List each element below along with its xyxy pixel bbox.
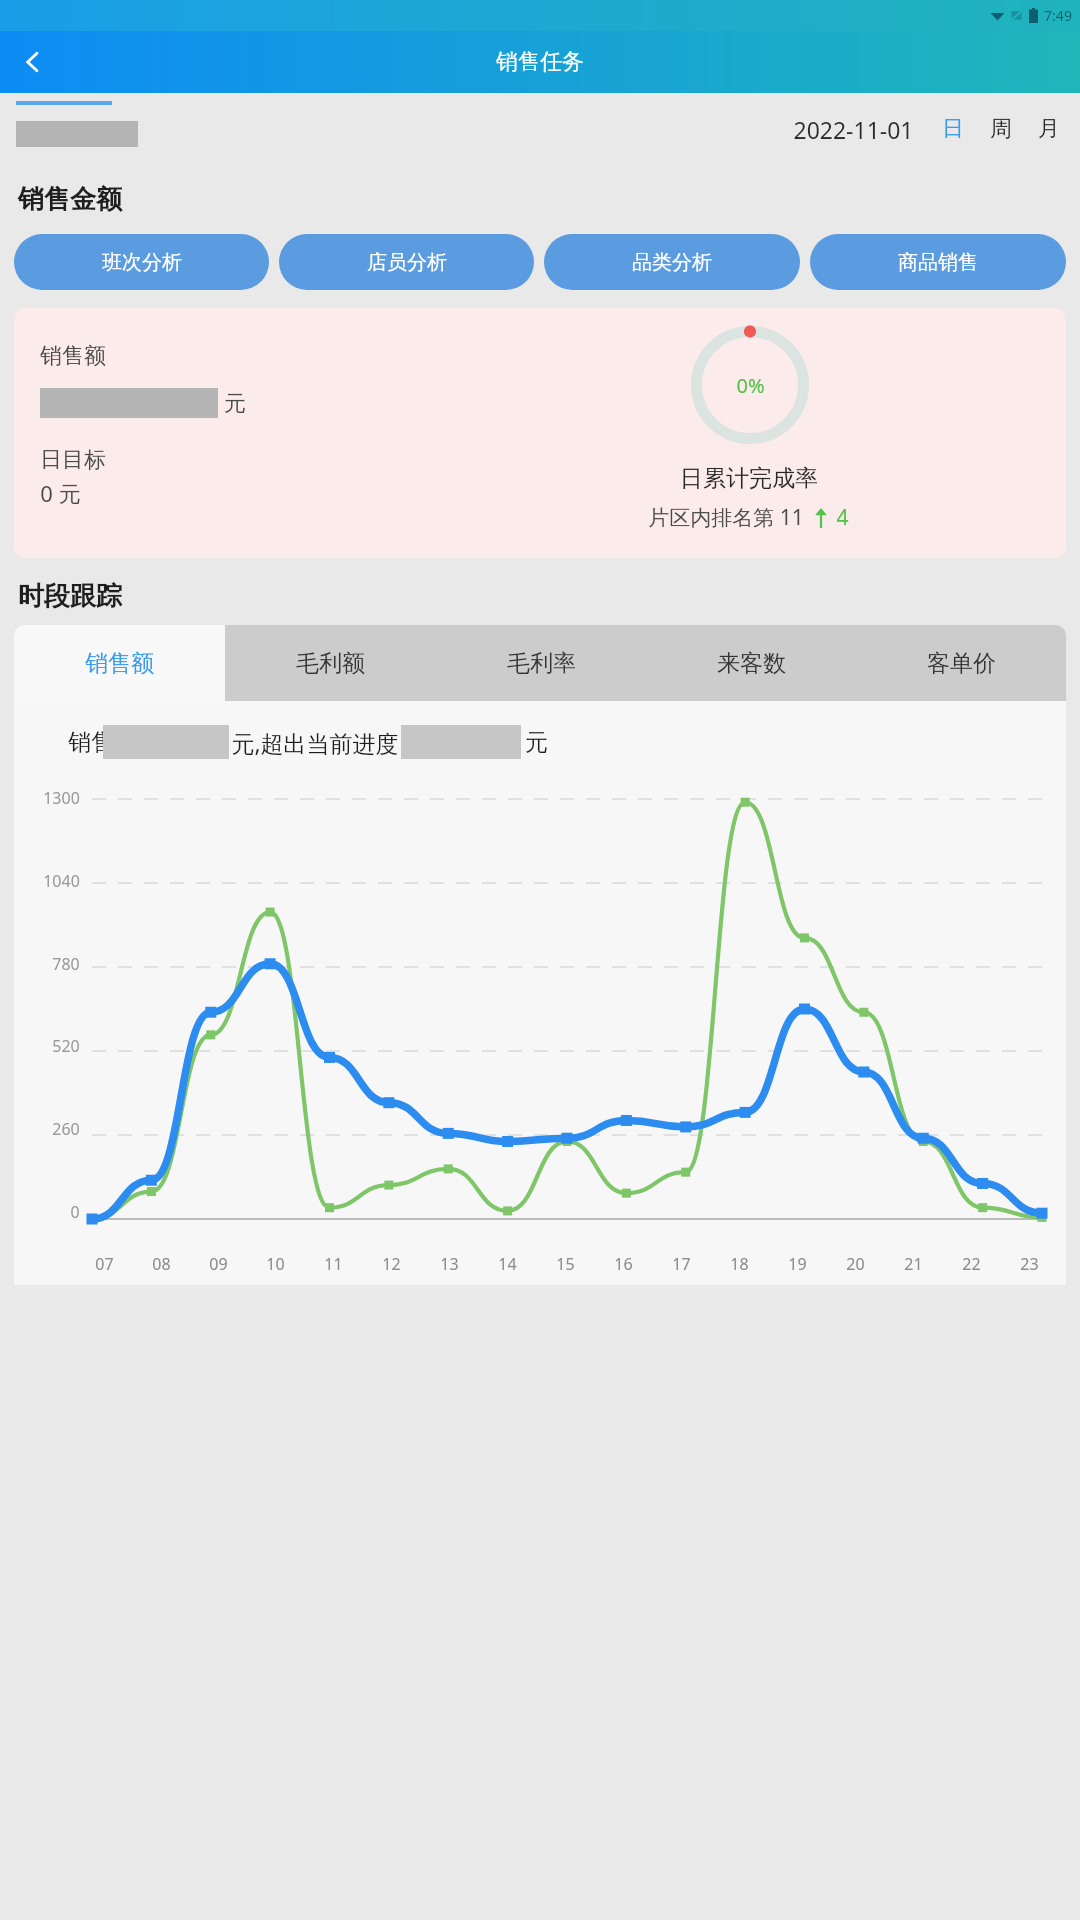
staticText: 18 [730,1253,749,1275]
staticText: 元 [525,728,548,757]
staticText: 23 [1020,1253,1039,1275]
staticText: 片区内排名第 11 [648,503,804,532]
staticText: 客单价 [927,649,996,678]
staticText: 0 元 [40,478,81,508]
staticText: 21 [904,1253,923,1275]
staticText: 班次分析 [102,250,182,275]
staticText: 日累计完成率 [680,464,818,493]
staticText: 来客数 [717,649,786,678]
staticText: 12 [382,1253,401,1275]
button[interactable]: 商品销售 [810,234,1066,290]
staticText: 09 [209,1253,228,1275]
button[interactable]: Back [6,35,60,89]
button[interactable]: 周 [990,115,1012,143]
button[interactable]: 月 [1038,115,1060,143]
staticText: 销售额 [85,649,154,678]
staticText: 1040 [43,870,80,892]
button[interactable]: 毛利额 [225,625,436,701]
staticText: 13 [440,1253,459,1275]
button[interactable]: 店员分析 [279,234,534,290]
staticText: 销售额 [40,342,106,370]
staticText: 元 [224,390,246,418]
staticText: 元,超出当前进度 [231,727,399,758]
staticText: 22 [962,1253,981,1275]
staticText: 14 [498,1253,517,1275]
staticText: 15 [556,1253,575,1275]
staticText: 周 [990,115,1012,143]
button[interactable]: 销售额 [14,625,225,701]
staticText: 2022-11-01 [793,114,914,145]
staticText: 毛利额 [296,649,365,678]
staticText: 0 [70,1201,80,1223]
staticText: 19 [788,1253,807,1275]
staticText: 日 [942,115,964,143]
staticText: 07 [95,1253,114,1275]
staticText: 月 [1038,115,1060,143]
staticText: 10 [266,1253,285,1275]
button[interactable]: 品类分析 [544,234,800,290]
staticText: 260 [52,1118,80,1140]
button[interactable]: 毛利率 [436,625,646,701]
staticText: 7:49 [1044,6,1072,25]
staticText: 08 [152,1253,171,1275]
button[interactable]: 班次分析 [14,234,269,290]
staticText: 520 [52,1035,80,1057]
staticText: 时段跟踪 [18,580,122,613]
button[interactable]: 来客数 [646,625,856,701]
staticText: 17 [672,1253,691,1275]
staticText: 商品销售 [898,250,978,275]
staticText: 780 [52,953,80,975]
staticText: 4 [836,503,849,532]
button[interactable]: 销售额 [14,308,1066,558]
staticText: 毛利率 [507,649,576,678]
staticText: 16 [614,1253,633,1275]
staticText: 20 [846,1253,865,1275]
staticText: 销售任务 [496,48,584,76]
button[interactable]: 客单价 [856,625,1066,701]
staticText: 店员分析 [367,250,447,275]
staticText: 11 [324,1253,343,1275]
staticText: 1300 [43,787,80,809]
staticText: 品类分析 [632,250,712,275]
staticText: 销售金额 [18,183,122,216]
staticText: 日目标 [40,446,106,474]
button[interactable]: 日 [942,115,964,143]
staticText: 0% [736,372,765,399]
staticText: 销售额 [68,728,137,757]
